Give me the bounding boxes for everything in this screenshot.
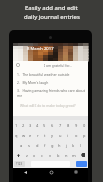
staticText: 0 [83, 123, 86, 128]
staticText: l [80, 143, 82, 148]
staticText: i [67, 133, 69, 138]
staticText: 3 [29, 123, 32, 128]
button[interactable]: q [13, 130, 20, 140]
staticText: 2 [22, 123, 25, 128]
staticText: z [26, 153, 28, 158]
staticText: y [51, 133, 54, 138]
staticText: What will I do to make today great? [20, 103, 76, 108]
button[interactable]: 1. The beautiful weather outside [17, 72, 88, 80]
button[interactable] [14, 150, 23, 160]
staticText: 1. The beautiful weather outside [17, 72, 70, 77]
button[interactable] [78, 150, 87, 160]
button[interactable]: v [46, 150, 54, 160]
staticText: Easily add and edit [25, 4, 78, 12]
staticText: 1 [15, 123, 18, 128]
staticText: d [36, 143, 39, 148]
button[interactable]: j [63, 140, 70, 150]
button[interactable]: 9 [72, 120, 80, 130]
staticText: v [49, 153, 52, 158]
button[interactable]: 8 [64, 120, 72, 130]
button[interactable]: 3 [27, 120, 34, 130]
staticText: 3. Having amazing friends who care about [17, 88, 85, 93]
button[interactable]: n [62, 150, 70, 160]
staticText: 2. My Mom's laugh [17, 80, 49, 85]
staticText: w [22, 133, 26, 138]
staticText: x [33, 153, 36, 158]
staticText: o [75, 133, 78, 138]
staticText: f [44, 143, 46, 148]
button[interactable]: Enter [76, 161, 87, 167]
button[interactable]: 2. My Mom's laugh [17, 80, 88, 88]
staticText: b [57, 153, 60, 158]
button[interactable]: u [56, 130, 64, 140]
staticText: q [15, 133, 18, 138]
button[interactable]: 0 [80, 120, 88, 130]
button[interactable]: i [64, 130, 72, 140]
button[interactable]: ?123 [14, 161, 25, 167]
staticText: e [29, 133, 32, 138]
button[interactable]: b [54, 150, 62, 160]
button[interactable]: x [30, 150, 38, 160]
staticText: a [20, 143, 23, 148]
button[interactable]: k [70, 140, 77, 150]
staticText: I am grateful for... [44, 63, 72, 68]
button[interactable]: y [48, 130, 56, 140]
staticText: n [65, 153, 68, 158]
button[interactable]: a [17, 140, 25, 150]
button[interactable]: f [41, 140, 49, 150]
staticText: 8 March 2017 [27, 46, 54, 52]
button[interactable]: 2 [20, 120, 27, 130]
staticText: 5 [43, 123, 46, 128]
button[interactable]: c [38, 150, 46, 160]
staticText: k [72, 143, 75, 148]
staticText: ?123 [16, 162, 23, 166]
button[interactable]: h [56, 140, 63, 150]
button[interactable]: Home [47, 168, 55, 176]
button[interactable]: 1 [13, 120, 20, 130]
button[interactable]: p [80, 130, 88, 140]
button[interactable]: e [27, 130, 34, 140]
button[interactable]: 7 [56, 120, 64, 130]
staticText: 9 [75, 123, 78, 128]
staticText: daily journal entries [24, 13, 80, 21]
staticText: p [83, 133, 86, 138]
button[interactable]: t [41, 130, 48, 140]
button[interactable]: r [34, 130, 41, 140]
staticText: r [37, 133, 39, 138]
button[interactable]: 6 [48, 120, 56, 130]
staticText: s [28, 143, 30, 148]
button[interactable]: Back [21, 168, 29, 176]
staticText: c [41, 153, 43, 158]
button[interactable]: s [25, 140, 33, 150]
button[interactable]: 4 [34, 120, 41, 130]
button[interactable]: l [77, 140, 84, 150]
button[interactable]: z [23, 150, 30, 160]
button[interactable]: o [72, 130, 80, 140]
staticText: 7 [59, 123, 62, 128]
staticText: me [17, 93, 23, 98]
staticText: m [72, 153, 76, 158]
button[interactable]: g [49, 140, 56, 150]
button[interactable]: d [33, 140, 41, 150]
staticText: h [58, 143, 61, 148]
staticText: j [66, 143, 68, 148]
button[interactable]: 3. Having amazing friends who care about [17, 88, 88, 96]
button[interactable]: w [20, 130, 27, 140]
button[interactable]: Recents [72, 168, 80, 176]
staticText: u [59, 133, 62, 138]
button[interactable]: I am grateful for... [13, 61, 88, 69]
button[interactable]: 5 [41, 120, 48, 130]
staticText: 8 [67, 123, 70, 128]
button[interactable]: m [70, 150, 78, 160]
staticText: 6 [51, 123, 54, 128]
staticText: t [44, 133, 46, 138]
staticText: 4 [36, 123, 39, 128]
staticText: g [51, 143, 54, 148]
